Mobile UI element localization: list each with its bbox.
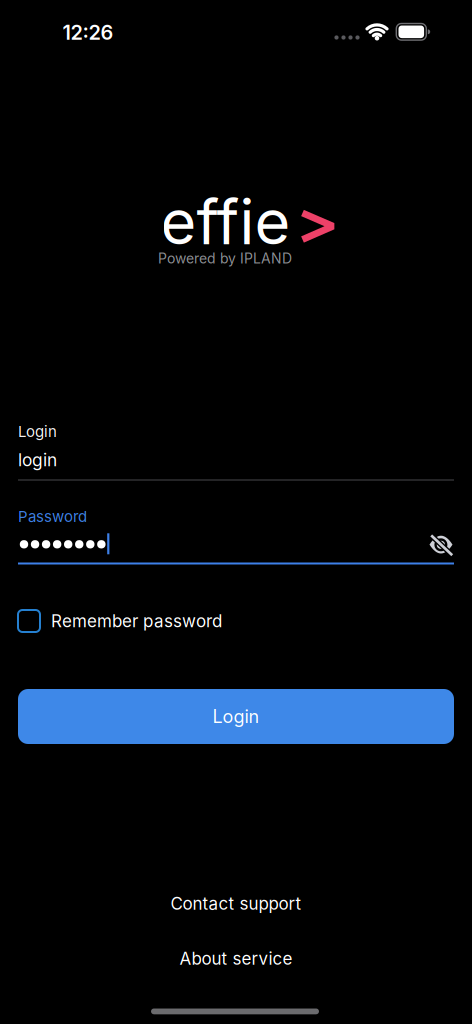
staticText: Powered by IPLAND bbox=[158, 250, 292, 267]
button[interactable]: About service bbox=[179, 948, 292, 969]
staticText: effie bbox=[160, 185, 290, 259]
staticText: About service bbox=[179, 948, 292, 969]
staticText: Contact support bbox=[170, 893, 301, 914]
staticText: Password bbox=[18, 507, 87, 525]
staticText: Remember password bbox=[51, 611, 222, 631]
button[interactable]: Remember password bbox=[18, 610, 454, 632]
button[interactable]: Show password bbox=[428, 531, 454, 557]
staticText: 12:26 bbox=[62, 20, 113, 45]
button[interactable]: Login bbox=[18, 689, 454, 744]
staticText: Login bbox=[212, 706, 259, 727]
button[interactable]: Contact support bbox=[170, 893, 301, 914]
staticText: login bbox=[18, 449, 57, 470]
staticText: Login bbox=[18, 422, 57, 440]
